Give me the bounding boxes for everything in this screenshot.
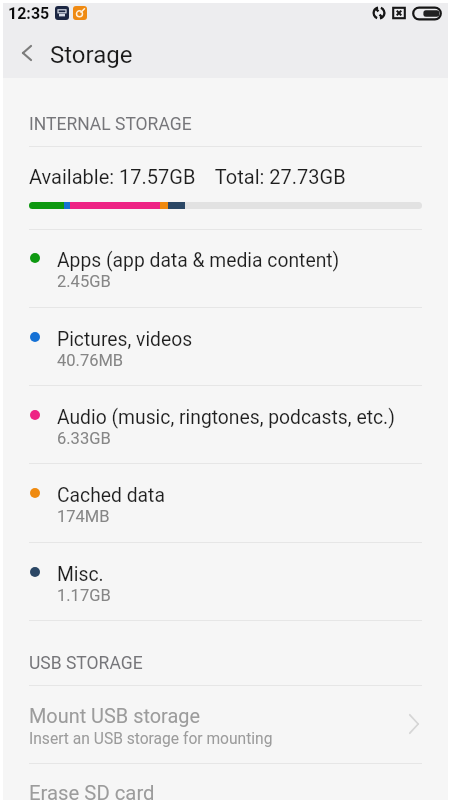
staticText: 6.33GB: [57, 429, 111, 448]
staticText: 174MB: [57, 507, 110, 526]
button[interactable]: Cached data: [0, 464, 450, 542]
staticText: Mount USB storage: [29, 705, 200, 728]
button[interactable]: Apps (app data & media content): [0, 229, 450, 307]
button[interactable]: Audio (music, ringtones, podcasts, etc.): [0, 386, 450, 464]
staticText: 1.17GB: [57, 586, 111, 605]
staticText: Audio (music, ringtones, podcasts, etc.): [57, 406, 395, 429]
staticText: Erase SD card: [29, 781, 155, 800]
button[interactable]: Pictures, videos: [0, 308, 450, 386]
staticText: 2.45GB: [57, 272, 111, 291]
staticText: Storage: [50, 41, 133, 69]
button[interactable]: Back: [0, 28, 50, 78]
button[interactable]: Erase SD card: [0, 763, 450, 800]
staticText: Apps (app data & media content): [57, 249, 340, 272]
staticText: Insert an USB storage for mounting: [29, 730, 273, 748]
staticText: Available: 17.57GB Total: 27.73GB: [29, 165, 346, 188]
staticText: USB STORAGE: [29, 653, 143, 674]
button[interactable]: Mount USB storage: [0, 686, 450, 762]
staticText: 40.76MB: [57, 351, 124, 370]
staticText: 12:35: [8, 4, 50, 23]
staticText: Pictures, videos: [57, 328, 193, 351]
staticText: INTERNAL STORAGE: [29, 114, 192, 135]
staticText: Cached data: [57, 484, 165, 507]
button[interactable]: Misc.: [0, 543, 450, 621]
staticText: Misc.: [57, 563, 104, 586]
